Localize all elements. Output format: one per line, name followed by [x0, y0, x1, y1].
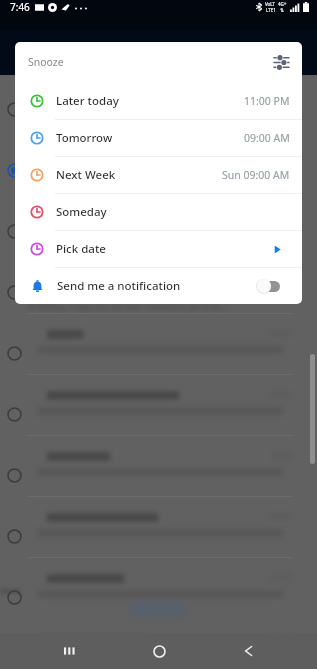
staticText: Snooze — [28, 55, 64, 69]
staticText: Later today — [56, 93, 119, 109]
staticText: 4G+ — [278, 1, 287, 7]
staticText: Someday — [56, 204, 107, 220]
button[interactable]: Later today — [15, 82, 302, 119]
staticText: 09:00 AM — [244, 131, 290, 145]
button[interactable]: Home — [138, 633, 180, 669]
staticText: Hi Akshay, I hope you are well. I wanted… — [28, 301, 227, 312]
button[interactable]: Next Week — [15, 156, 302, 193]
staticText: Send me a notification — [57, 278, 181, 294]
staticText: Sun 09:00 AM — [222, 168, 290, 182]
button[interactable]: Back — [227, 633, 269, 669]
button[interactable]: Send me a notification toggle — [256, 278, 280, 294]
staticText: Pick date — [56, 241, 106, 257]
button[interactable]: Send me a notification — [15, 267, 302, 304]
staticText: Tomorrow — [56, 130, 113, 146]
button[interactable]: Pick date — [15, 230, 302, 267]
staticText: VoLT — [265, 1, 276, 7]
staticText: Next Week — [56, 167, 116, 183]
staticText: 11:00 PM — [244, 94, 290, 108]
button[interactable]: Tomorrow — [15, 119, 302, 156]
staticText: ⇅ — [280, 7, 285, 13]
staticText: LTE1 — [266, 7, 276, 13]
button[interactable]: Recents — [48, 633, 90, 669]
button[interactable]: Someday — [15, 193, 302, 230]
button[interactable]: Snooze options — [269, 50, 293, 74]
staticText: 7:46 — [10, 0, 30, 14]
